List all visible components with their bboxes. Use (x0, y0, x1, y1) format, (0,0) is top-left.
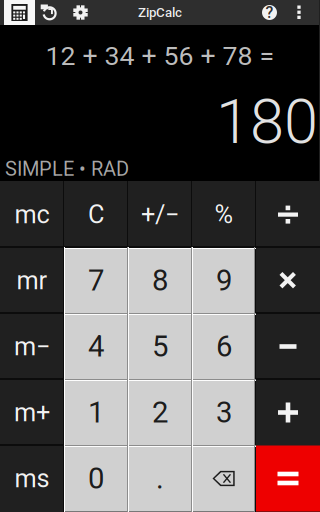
staticText: ms (14, 464, 49, 493)
button[interactable]: 9 (192, 247, 256, 313)
staticText: 5 (152, 329, 168, 364)
button[interactable]: m− (0, 313, 64, 379)
button[interactable]: mr (0, 247, 64, 313)
staticText: ? (265, 3, 273, 22)
staticText: . (156, 461, 164, 496)
staticText: 9 (216, 263, 232, 298)
button[interactable]: 3 (192, 379, 256, 445)
staticText: 3 (216, 395, 232, 430)
button[interactable]: Plus (256, 379, 320, 445)
staticText: mc (14, 200, 49, 229)
staticText: % (214, 200, 233, 229)
staticText: 1 (88, 395, 104, 430)
button[interactable]: +/− (128, 181, 192, 247)
staticText: ZipCalc (138, 5, 182, 20)
button[interactable]: 6 (192, 313, 256, 379)
button[interactable]: Minus (256, 313, 320, 379)
button[interactable]: History (35, 0, 64, 25)
staticText: 2 (152, 395, 168, 430)
button[interactable]: m+ (0, 379, 64, 445)
button[interactable]: 4 (64, 313, 128, 379)
staticText: C (88, 200, 104, 229)
button[interactable]: Multiply (256, 247, 320, 313)
staticText: 7 (88, 263, 104, 298)
button[interactable]: Calculator (4, 0, 35, 25)
staticText: +/− (141, 200, 179, 229)
button[interactable]: 7 (64, 247, 128, 313)
button[interactable]: More options (288, 0, 310, 25)
button[interactable]: 5 (128, 313, 192, 379)
button[interactable]: C (64, 181, 128, 247)
staticText: mr (16, 266, 47, 295)
staticText: m− (14, 332, 50, 361)
staticText: 4 (88, 329, 104, 364)
button[interactable]: % (192, 181, 256, 247)
button[interactable]: mc (0, 181, 64, 247)
staticText: SIMPLE • RAD (5, 157, 129, 181)
button[interactable]: 8 (128, 247, 192, 313)
staticText: m+ (14, 398, 50, 427)
button[interactable]: ms (0, 445, 64, 511)
staticText: 180 (216, 86, 318, 158)
button[interactable]: Equals (256, 445, 320, 511)
button[interactable]: . (128, 445, 192, 511)
button[interactable]: Settings (64, 0, 97, 25)
button[interactable]: Divide (256, 181, 320, 247)
staticText: 12 + 34 + 56 + 78 = (45, 40, 274, 72)
staticText: 6 (216, 329, 232, 364)
staticText: 8 (152, 263, 168, 298)
button[interactable]: 2 (128, 379, 192, 445)
button[interactable]: Backspace (192, 445, 256, 511)
button[interactable]: 0 (64, 445, 128, 511)
button[interactable]: 1 (64, 379, 128, 445)
staticText: 0 (88, 461, 104, 496)
button[interactable]: Help (257, 0, 282, 25)
